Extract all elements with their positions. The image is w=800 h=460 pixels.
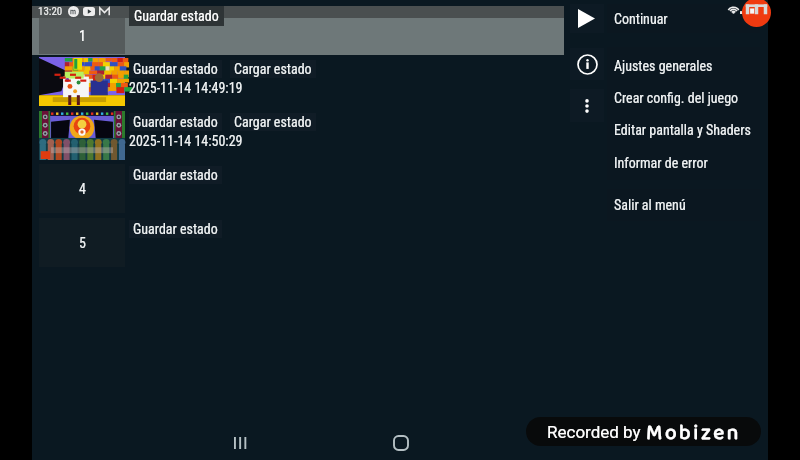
staticText: 2025-11-14 14:49:19	[129, 80, 243, 96]
button[interactable]: Continuar	[570, 4, 760, 33]
button[interactable]: Guardar estado	[129, 60, 222, 78]
staticText: Guardar estado	[133, 114, 218, 130]
button[interactable]: Recents	[215, 418, 265, 460]
button[interactable]: Guardar estado	[129, 113, 222, 131]
button[interactable]: 4	[39, 164, 125, 213]
staticText: Guardar estado	[133, 167, 218, 183]
staticText: Cargar estado	[234, 114, 312, 130]
staticText: Guardar estado	[133, 221, 218, 237]
button[interactable]: Salir al menú	[570, 189, 760, 221]
staticText: 4	[79, 181, 86, 197]
button[interactable]: Recorded by Mobizen	[526, 417, 761, 446]
button[interactable]: Informar de error	[570, 147, 760, 179]
button[interactable]: Crear config. del juego	[570, 82, 760, 114]
staticText: Mobizen	[646, 417, 741, 445]
staticText: Guardar estado	[134, 8, 219, 24]
staticText: Crear config. del juego	[614, 90, 739, 106]
button[interactable]: 1	[39, 18, 125, 54]
button[interactable]: Ajustes generales	[570, 50, 760, 82]
button[interactable]: Cargar estado	[230, 113, 316, 131]
button[interactable]	[39, 57, 125, 106]
button[interactable]: Mobizen recorder	[742, 0, 771, 27]
staticText: Editar pantalla y Shaders	[614, 122, 751, 138]
staticText: Ajustes generales	[614, 58, 713, 74]
button[interactable]: Guardar estado	[129, 220, 222, 238]
staticText: m	[70, 7, 77, 16]
staticText: Continuar	[614, 11, 668, 27]
other: Information	[577, 54, 598, 75]
button[interactable]: Cargar estado	[230, 60, 316, 78]
staticText: Cargar estado	[234, 61, 312, 77]
button[interactable]	[39, 111, 125, 160]
staticText: Informar de error	[614, 155, 708, 171]
button[interactable]: 5	[39, 218, 125, 267]
button[interactable]: Guardar estado	[129, 166, 222, 184]
button[interactable]: Home	[376, 418, 426, 460]
button[interactable]: Editar pantalla y Shaders	[570, 114, 760, 146]
staticText: 1	[79, 28, 86, 44]
staticText: Guardar estado	[133, 61, 218, 77]
other: More options	[579, 98, 595, 114]
staticText: Recorded by	[547, 422, 641, 442]
staticText: 13:20	[38, 5, 63, 18]
staticText: 5	[79, 235, 86, 251]
button[interactable]: Guardar estado	[129, 6, 224, 26]
staticText: Salir al menú	[614, 197, 686, 213]
staticText: 2025-11-14 14:50:29	[129, 133, 243, 149]
